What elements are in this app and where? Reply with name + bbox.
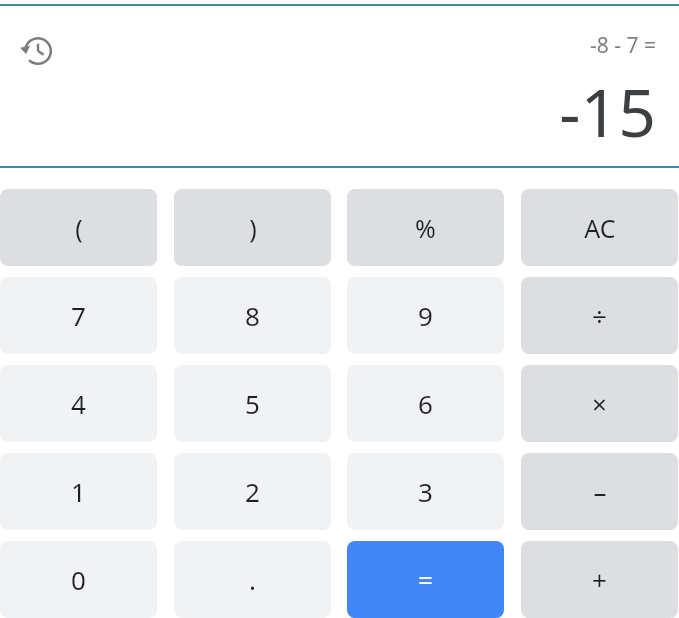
button[interactable]: 9	[347, 277, 504, 354]
staticText: 7	[71, 298, 86, 333]
button[interactable]: ×	[521, 365, 678, 442]
button[interactable]: .	[174, 541, 331, 618]
button[interactable]: 8	[174, 277, 331, 354]
staticText: 1	[71, 474, 86, 509]
button[interactable]: (	[0, 189, 157, 266]
button[interactable]: 2	[174, 453, 331, 530]
button[interactable]: 5	[174, 365, 331, 442]
button[interactable]: +	[521, 541, 678, 618]
staticText: 4	[71, 386, 86, 421]
staticText: (	[75, 211, 83, 245]
button[interactable]: 1	[0, 453, 157, 530]
staticText: –	[593, 474, 607, 509]
staticText: 8	[245, 298, 260, 333]
button[interactable]: 7	[0, 277, 157, 354]
staticText: AC	[584, 211, 616, 245]
staticText: .	[249, 562, 256, 597]
button[interactable]: –	[521, 453, 678, 530]
staticText: =	[418, 562, 433, 597]
staticText: 6	[418, 386, 433, 421]
button[interactable]: 0	[0, 541, 157, 618]
staticText: )	[249, 211, 257, 245]
staticText: 3	[418, 474, 433, 509]
button[interactable]: 3	[347, 453, 504, 530]
staticText: ×	[592, 386, 607, 421]
staticText: 2	[245, 474, 260, 509]
button[interactable]: 4	[0, 365, 157, 442]
staticText: 5	[245, 386, 260, 421]
button[interactable]: %	[347, 189, 504, 266]
staticText: -15	[559, 66, 656, 156]
staticText: -8 - 7 =	[590, 31, 656, 60]
button[interactable]: =	[347, 541, 504, 618]
button[interactable]: ÷	[521, 277, 678, 354]
button[interactable]: History	[18, 31, 58, 71]
staticText: %	[415, 211, 436, 245]
staticText: ÷	[592, 298, 607, 333]
staticText: 9	[418, 298, 433, 333]
button[interactable]: AC	[521, 189, 678, 266]
button[interactable]: 6	[347, 365, 504, 442]
staticText: +	[592, 562, 607, 597]
button[interactable]: )	[174, 189, 331, 266]
staticText: 0	[71, 562, 86, 597]
